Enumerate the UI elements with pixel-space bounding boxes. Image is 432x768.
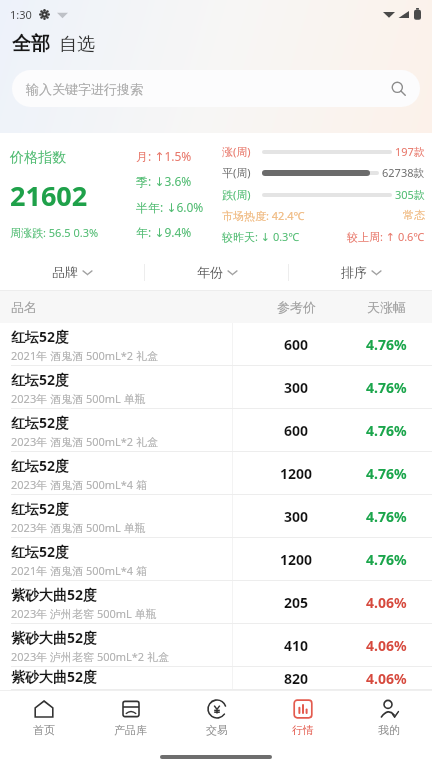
button[interactable]: 全部: [12, 30, 50, 58]
button[interactable]: 紫砂大曲52度: [0, 624, 432, 667]
staticText: 我的: [378, 723, 400, 737]
staticText: 市场热度: 42.4℃: [222, 208, 305, 223]
staticText: 2023年 酒鬼酒 500mL 单瓶: [11, 391, 146, 406]
staticText: 天涨幅: [367, 299, 406, 315]
staticText: 红坛52度: [11, 499, 70, 518]
staticText: 全部: [12, 32, 50, 56]
staticText: 21602: [10, 177, 88, 214]
staticText: 输入关键字进行搜索: [26, 81, 143, 97]
button[interactable]: 首页: [0, 691, 87, 745]
staticText: 205: [284, 593, 309, 612]
staticText: 平(周): [222, 165, 262, 180]
staticText: 4.06%: [366, 593, 407, 612]
staticText: 年: ↓9.4%: [136, 224, 192, 240]
staticText: 交易: [206, 723, 228, 737]
staticText: 4.06%: [366, 636, 407, 655]
staticText: 2023年 酒鬼酒 500mL*2 礼盒: [11, 434, 159, 449]
staticText: 4.76%: [366, 335, 407, 354]
button[interactable]: 行情: [260, 691, 346, 745]
staticText: 红坛52度: [11, 456, 70, 475]
staticText: 常态: [403, 208, 425, 222]
staticText: 红坛52度: [11, 413, 70, 432]
button[interactable]: 红坛52度: [0, 538, 432, 581]
staticText: 季: ↓3.6%: [136, 173, 192, 189]
button[interactable]: 红坛52度: [0, 452, 432, 495]
staticText: 紫砂大曲52度: [11, 585, 98, 604]
button[interactable]: 产品库: [87, 691, 174, 745]
staticText: 4.76%: [366, 421, 407, 440]
staticText: 1200: [280, 550, 313, 569]
staticText: 较上周: ↑ 0.6℃: [347, 229, 425, 244]
staticText: 2023年 酒鬼酒 500mL*4 箱: [11, 477, 148, 492]
staticText: 4.76%: [366, 550, 407, 569]
button[interactable]: 年份: [145, 253, 288, 291]
staticText: 2023年 泸州老窖 500mL*4 箱: [11, 688, 159, 690]
staticText: 首页: [33, 723, 55, 737]
staticText: 参考价: [277, 299, 316, 315]
staticText: 4.06%: [366, 669, 407, 688]
staticText: 自选: [59, 33, 95, 56]
staticText: 600: [284, 421, 309, 440]
staticText: 紫砂大曲52度: [11, 628, 98, 647]
staticText: 红坛52度: [11, 542, 70, 561]
staticText: 价格指数: [10, 149, 66, 167]
button[interactable]: 排序: [289, 253, 432, 291]
staticText: 4.76%: [366, 507, 407, 526]
staticText: 品名: [11, 299, 37, 315]
staticText: 品牌: [52, 264, 78, 280]
button[interactable]: 紫砂大曲52度: [0, 667, 432, 690]
staticText: 行情: [292, 723, 314, 737]
staticText: 1200: [280, 464, 313, 483]
staticText: 产品库: [114, 723, 147, 737]
staticText: 820: [284, 669, 309, 688]
button[interactable]: 红坛52度: [0, 366, 432, 409]
staticText: 较昨天: ↓ 0.3℃: [222, 229, 300, 244]
staticText: 2023年 泸州老窖 500mL 单瓶: [11, 606, 157, 621]
staticText: 4.76%: [366, 378, 407, 397]
button[interactable]: 输入关键字进行搜索: [12, 70, 420, 107]
staticText: 2023年 酒鬼酒 500mL 单瓶: [11, 520, 146, 535]
staticText: 410: [284, 636, 309, 655]
staticText: 2021年 酒鬼酒 500mL*4 箱: [11, 563, 148, 578]
button[interactable]: 紫砂大曲52度: [0, 581, 432, 624]
staticText: 跌(周): [222, 187, 262, 202]
button[interactable]: 品牌: [0, 253, 144, 291]
staticText: 紫砂大曲52度: [11, 667, 98, 686]
staticText: 年份: [197, 264, 223, 280]
staticText: 排序: [341, 264, 367, 280]
button[interactable]: 红坛52度: [0, 323, 432, 366]
staticText: 红坛52度: [11, 370, 70, 389]
button[interactable]: 交易: [174, 691, 260, 745]
staticText: 197款: [395, 144, 425, 159]
staticText: 涨(周): [222, 144, 262, 159]
staticText: 半年: ↓6.0%: [136, 199, 204, 215]
staticText: 305款: [395, 187, 425, 202]
staticText: 300: [284, 378, 309, 397]
staticText: 月: ↑1.5%: [136, 148, 192, 164]
staticText: 300: [284, 507, 309, 526]
staticText: 2023年 泸州老窖 500mL*2 礼盒: [11, 649, 170, 664]
button[interactable]: 红坛52度: [0, 495, 432, 538]
button[interactable]: 自选: [59, 31, 95, 58]
button[interactable]: 红坛52度: [0, 409, 432, 452]
button[interactable]: 我的: [346, 691, 432, 745]
staticText: 2021年 酒鬼酒 500mL*2 礼盒: [11, 348, 159, 363]
staticText: 周涨跌: 56.5 0.3%: [10, 225, 99, 240]
staticText: 1:30: [10, 7, 32, 22]
staticText: 600: [284, 335, 309, 354]
staticText: 红坛52度: [11, 327, 70, 346]
staticText: 4.76%: [366, 464, 407, 483]
staticText: 62738款: [382, 165, 425, 180]
